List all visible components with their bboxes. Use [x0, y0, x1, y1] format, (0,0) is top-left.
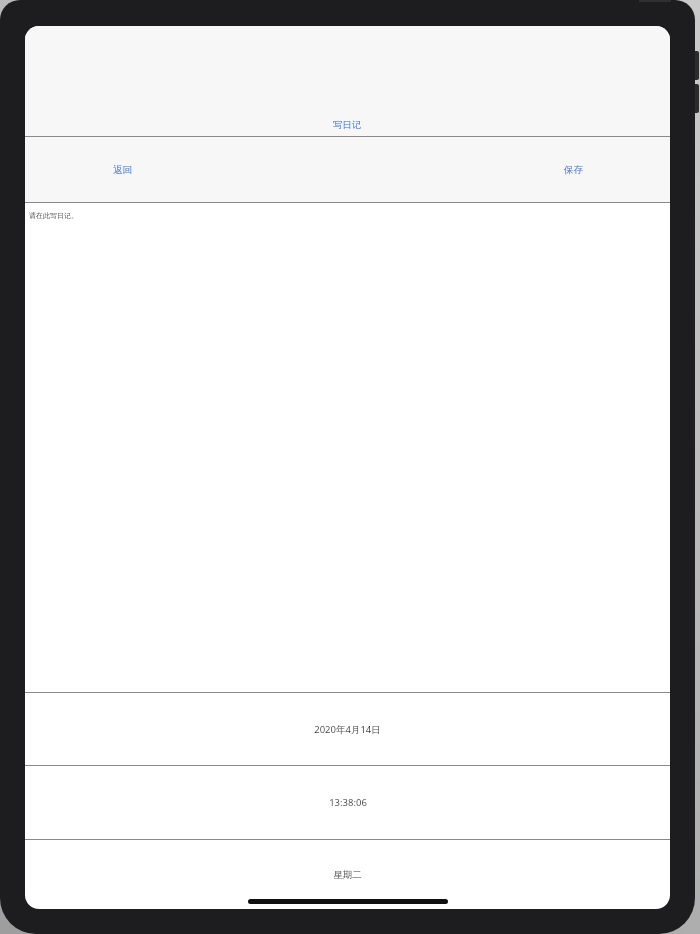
staticText: 返回 — [113, 164, 132, 176]
button[interactable]: 保存 — [564, 164, 583, 176]
button[interactable]: 13:38:06 — [25, 766, 670, 839]
staticText: 星期二 — [333, 869, 362, 881]
staticText: 请在此写日记。 — [29, 211, 78, 220]
button[interactable]: 2020年4月14日 — [25, 693, 670, 765]
staticText: 13:38:06 — [329, 796, 367, 809]
staticText: 2020年4月14日 — [314, 723, 381, 736]
button[interactable]: 返回 — [113, 164, 132, 176]
staticText: 写日记 — [333, 119, 362, 131]
button[interactable]: 星期二 — [25, 840, 670, 909]
staticText: 保存 — [564, 164, 583, 176]
